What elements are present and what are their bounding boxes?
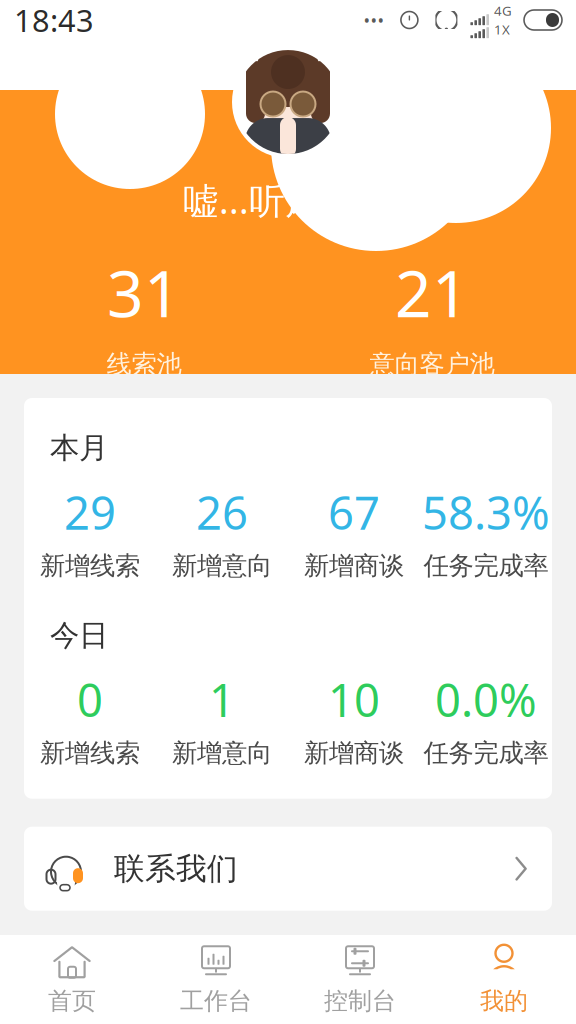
staticText: 新增意向 xyxy=(172,550,272,581)
staticText: 10 xyxy=(328,669,380,730)
staticText: 1 xyxy=(209,669,235,730)
staticText: 本月 xyxy=(50,430,108,466)
staticText: 新增线索 xyxy=(40,738,140,769)
staticText: 4G xyxy=(494,2,512,19)
button[interactable]: 31 xyxy=(0,246,288,384)
staticText: 首页 xyxy=(48,986,96,1016)
staticText: 29 xyxy=(64,482,116,542)
staticText: 1X xyxy=(494,20,510,38)
staticText: 意向客户池 xyxy=(369,349,494,380)
staticText: 21 xyxy=(395,250,469,335)
staticText: 控制台 xyxy=(324,986,396,1016)
staticText: 我的 xyxy=(480,986,528,1016)
button[interactable]: Profile photo xyxy=(232,46,344,158)
staticText: 新增意向 xyxy=(172,738,272,769)
staticText: 0 xyxy=(77,669,103,730)
staticText: 58.3% xyxy=(422,482,550,542)
button[interactable]: 联系我们 xyxy=(24,827,552,911)
button[interactable]: 工作台 xyxy=(144,935,288,1024)
button[interactable]: 21 xyxy=(288,246,576,384)
staticText: 今日 xyxy=(50,617,108,653)
staticText: 工作台 xyxy=(180,986,252,1016)
staticText: 0.0% xyxy=(435,669,537,730)
button[interactable]: 我的 xyxy=(432,935,576,1024)
staticText: 任务完成率 xyxy=(423,738,548,769)
staticText: 线索池 xyxy=(106,349,181,380)
button[interactable]: 控制台 xyxy=(288,935,432,1024)
staticText: 新增线索 xyxy=(40,550,140,581)
staticText: 嘘...听风看雨 xyxy=(183,176,393,224)
staticText: 26 xyxy=(196,482,248,542)
staticText: 31 xyxy=(107,250,181,335)
staticText: 任务完成率 xyxy=(423,550,548,581)
staticText: 67 xyxy=(328,482,380,542)
staticText: 联系我们 xyxy=(114,850,238,888)
staticText: ••• xyxy=(363,8,384,31)
staticText: 新增商谈 xyxy=(304,738,404,769)
button[interactable]: 首页 xyxy=(0,935,144,1024)
staticText: 新增商谈 xyxy=(304,550,404,581)
staticText: 18:43 xyxy=(14,0,94,40)
